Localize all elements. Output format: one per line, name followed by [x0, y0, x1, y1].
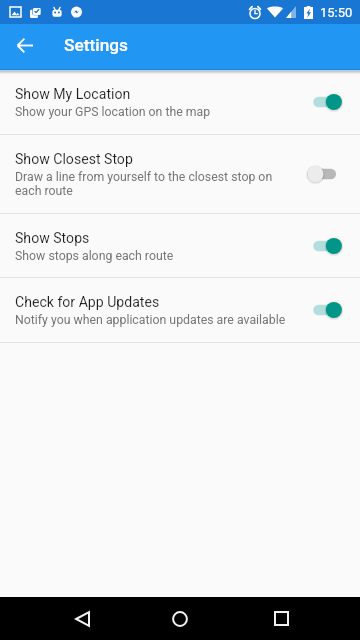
button[interactable]: Navigate up: [0, 24, 49, 66]
staticText: Show Stops: [15, 230, 90, 247]
staticText: Show Closest Stop: [15, 151, 133, 168]
button[interactable]: Show My Location: [0, 69, 360, 134]
button[interactable]: Show Closest Stop: [0, 135, 360, 213]
button[interactable]: Show Stops: [0, 214, 360, 277]
staticText: Settings: [64, 35, 129, 55]
staticText: Check for App Updates: [15, 294, 160, 311]
staticText: 15:50: [320, 5, 353, 20]
button[interactable]: Recent apps: [261, 597, 301, 640]
staticText: Notify you when application updates are …: [15, 313, 286, 327]
button[interactable]: Home: [160, 597, 200, 640]
button[interactable]: Check for App Updates: [0, 278, 360, 342]
button[interactable]: Back: [62, 597, 102, 640]
staticText: Show your GPS location on the map: [15, 105, 211, 119]
staticText: Show My Location: [15, 86, 131, 103]
staticText: Draw a line from yourself to the closest…: [15, 170, 291, 198]
staticText: Show stops along each route: [15, 249, 174, 263]
